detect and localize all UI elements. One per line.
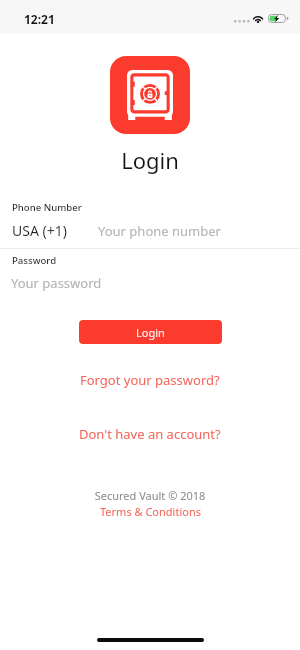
button[interactable]: Login (79, 320, 222, 344)
staticText: Your phone number (98, 222, 221, 240)
staticText: Password (12, 254, 57, 267)
staticText: Secured Vault © 2018 (0, 488, 300, 503)
staticText: Phone Number (12, 201, 82, 214)
button[interactable]: Don't have an account? (75, 423, 225, 445)
staticText: 12:21 (24, 11, 55, 27)
staticText: Terms & Conditions (100, 504, 201, 519)
button[interactable]: Forgot your password? (75, 369, 225, 391)
button[interactable]: Terms & Conditions (90, 503, 210, 519)
staticText: Your password (11, 274, 102, 292)
staticText: Forgot your password? (80, 371, 220, 389)
staticText: Login (136, 325, 165, 340)
staticText: Login (0, 145, 300, 175)
staticText: USA (+1) (12, 221, 67, 240)
staticText: Don't have an account? (79, 425, 221, 443)
